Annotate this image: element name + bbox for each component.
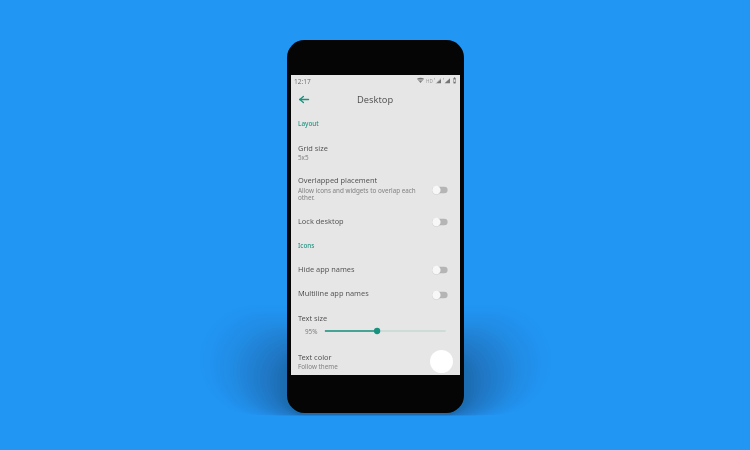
button[interactable]: Text colour, follow theme bbox=[291, 347, 460, 375]
staticText: Layout bbox=[298, 119, 319, 128]
button[interactable]: Text size, 95 percent bbox=[291, 324, 460, 338]
staticText: 95% bbox=[305, 327, 318, 336]
staticText: Overlapped placement bbox=[298, 175, 378, 185]
button[interactable]: Pick text colour bbox=[430, 350, 453, 373]
staticText: Hide app names bbox=[298, 264, 355, 274]
button[interactable]: Toggle setting, off bbox=[430, 263, 449, 277]
staticText: Text color bbox=[298, 352, 332, 362]
button[interactable]: Text size slider bbox=[291, 308, 460, 340]
button[interactable]: Toggle setting, off bbox=[430, 288, 449, 302]
button[interactable]: Overlapped placement bbox=[291, 171, 460, 205]
button[interactable]: Multiline app names bbox=[291, 283, 460, 306]
staticText: Desktop bbox=[357, 93, 394, 106]
staticText: Multiline app names bbox=[298, 288, 369, 298]
staticText: Allow icons and widgets to overlap each bbox=[298, 186, 416, 195]
staticText: Icons bbox=[298, 241, 315, 250]
staticText: Lock desktop bbox=[298, 216, 344, 226]
staticText: Follow theme bbox=[298, 362, 338, 371]
staticText: Text size bbox=[298, 313, 328, 323]
button[interactable]: Hide app names bbox=[291, 259, 460, 282]
staticText: Grid size bbox=[298, 143, 328, 153]
button[interactable]: Toggle setting, off bbox=[430, 183, 449, 197]
staticText: 12:17 bbox=[294, 77, 311, 86]
staticText: 5x5 bbox=[298, 153, 309, 162]
button[interactable]: Back bbox=[295, 90, 313, 108]
button[interactable]: Grid size, 5x5 bbox=[291, 137, 460, 167]
staticText: HD bbox=[426, 78, 433, 84]
staticText: other. bbox=[298, 193, 315, 202]
button[interactable]: Lock desktop bbox=[291, 210, 460, 234]
button[interactable]: Toggle setting, off bbox=[430, 215, 449, 229]
